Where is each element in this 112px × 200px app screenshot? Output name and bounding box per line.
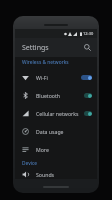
staticText: Bluetooth	[36, 92, 84, 99]
button[interactable]: Toggle Wi-Fi	[81, 75, 92, 80]
staticText: More	[36, 146, 92, 153]
button[interactable]: Bluetooth	[15, 86, 97, 104]
staticText: Data usage	[36, 128, 92, 135]
button[interactable]: More	[15, 140, 97, 158]
staticText: Cellular networks	[36, 110, 84, 117]
button[interactable]: Toggle Cellular networks	[84, 111, 92, 116]
staticText: Sounds	[36, 171, 92, 178]
button[interactable]: Sounds	[15, 169, 97, 179]
button[interactable]: Search	[81, 41, 94, 54]
button[interactable]: Toggle Bluetooth	[84, 93, 92, 98]
staticText: 12:30	[83, 31, 94, 36]
staticText: Wi-Fi	[36, 74, 81, 81]
staticText: Settings	[22, 43, 49, 53]
button[interactable]: Data usage	[15, 122, 97, 140]
button[interactable]: Cellular networks	[15, 104, 97, 122]
staticText: Device	[22, 160, 38, 167]
button[interactable]: Wi-Fi	[15, 68, 97, 86]
staticText: Wireless & networks	[22, 59, 69, 66]
